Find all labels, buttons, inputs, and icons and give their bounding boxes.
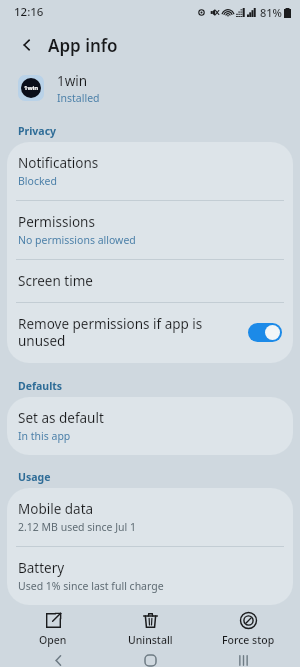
staticText: Battery	[18, 559, 65, 577]
button[interactable]: Set as default	[7, 397, 293, 455]
staticText: 1win	[24, 84, 39, 92]
button[interactable]: Recents	[208, 653, 278, 667]
staticText: Privacy	[18, 124, 57, 138]
staticText: Used 1% since last full charge	[18, 579, 164, 593]
staticText: Set as default	[18, 409, 104, 427]
staticText: Usage	[18, 470, 51, 484]
staticText: Blocked	[18, 174, 57, 188]
button[interactable]: Screen time	[7, 260, 293, 302]
button[interactable]: Open	[8, 609, 98, 650]
button[interactable]: 1win	[18, 66, 300, 110]
staticText: 2.12 MB used since Jul 1	[18, 520, 136, 534]
staticText: Screen time	[18, 272, 93, 290]
button[interactable]: Mobile data	[7, 488, 293, 546]
staticText: Installed	[57, 91, 100, 105]
button[interactable]: Remove permissions if app is unused	[7, 303, 293, 363]
button[interactable]: Back	[23, 653, 93, 667]
button[interactable]: Uninstall	[105, 609, 195, 650]
staticText: In this app	[18, 429, 71, 443]
staticText: Defaults	[18, 379, 63, 393]
staticText: 12:16	[14, 4, 44, 20]
button[interactable]: Home	[115, 653, 185, 667]
button[interactable]: Force stop	[203, 609, 293, 650]
staticText: Mobile data	[18, 500, 94, 518]
staticText: Uninstall	[128, 633, 173, 647]
button[interactable]: Back	[14, 32, 40, 58]
staticText: Notifications	[18, 154, 99, 172]
staticText: App info	[48, 34, 118, 57]
staticText: Open	[39, 633, 67, 647]
staticText: No permissions allowed	[18, 233, 136, 247]
button[interactable]: Notifications	[7, 142, 293, 200]
staticText: Remove permissions if app is unused	[18, 315, 203, 350]
button[interactable]: Battery	[7, 547, 293, 605]
staticText: 1win	[57, 72, 88, 90]
staticText: Force stop	[222, 633, 275, 647]
staticText: Permissions	[18, 213, 95, 231]
button[interactable]: Permissions	[7, 201, 293, 259]
staticText: 81%	[260, 5, 282, 20]
